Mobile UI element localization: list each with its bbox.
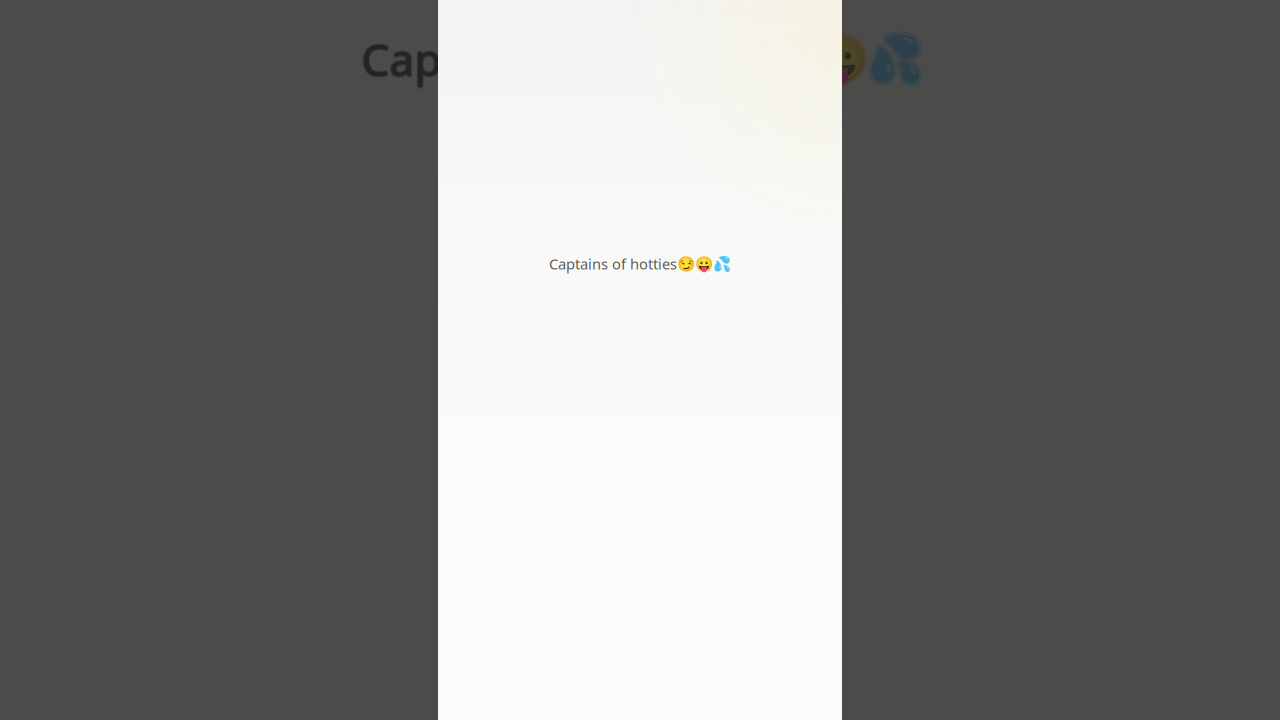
staticText: 😏😛💦: [761, 34, 926, 84]
staticText: Captains of hotties: [361, 28, 748, 87]
staticText: Captains of hotties: [363, 29, 750, 87]
staticText: 😏😛💦: [755, 31, 920, 82]
staticText: 😏😛💦: [757, 38, 922, 88]
staticText: Captains of hotties: [363, 31, 750, 89]
staticText: Captains of hotties: [363, 30, 750, 88]
staticText: 😏😛💦: [757, 30, 922, 80]
staticText: Captains of hotties: [360, 30, 747, 88]
staticText: Captains of hotties: [360, 31, 747, 89]
staticText: Captains of hotties: [360, 29, 747, 87]
staticText: 😏😛💦: [760, 36, 925, 87]
staticText: Captains of hotties: [361, 30, 748, 88]
staticText: Captains of hotties😏😛💦: [549, 254, 731, 273]
staticText: 😏😛💦: [757, 34, 922, 84]
button[interactable]: Captains of hotties: [438, 0, 842, 720]
staticText: 😏😛💦: [755, 36, 920, 87]
staticText: 😏😛💦: [753, 34, 918, 84]
staticText: Captains of hotties: [361, 31, 748, 90]
staticText: 😏😛💦: [760, 31, 925, 82]
